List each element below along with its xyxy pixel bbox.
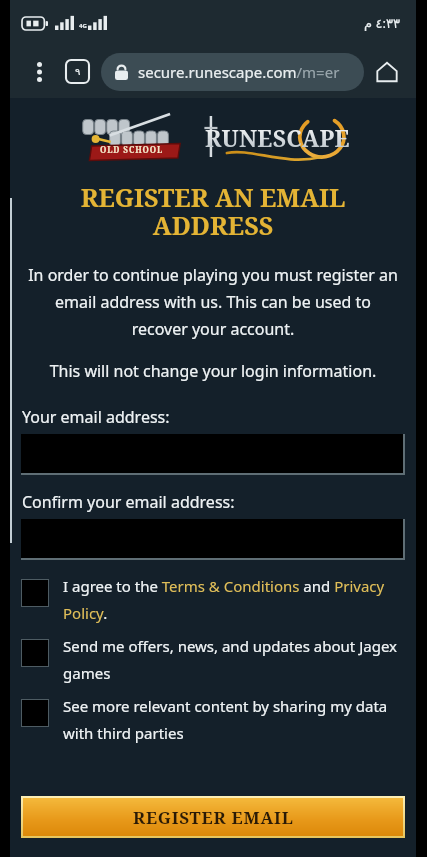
button[interactable]: Checkbox xyxy=(21,636,405,684)
staticText: Send me offers, news, and updates about … xyxy=(63,636,405,684)
staticText: I agree to the Terms & Conditions and Pr… xyxy=(63,576,405,624)
staticText: REGISTER AN EMAIL ADDRESS xyxy=(46,180,380,242)
staticText: REGISTER EMAIL xyxy=(133,806,294,829)
staticText: Your email address: xyxy=(22,406,416,428)
staticText: ٩ xyxy=(75,66,81,78)
staticText: RUNESCAPE xyxy=(205,122,350,153)
button[interactable]: secure.runescape.com/m=er xyxy=(101,53,364,91)
button[interactable]: Checkbox xyxy=(21,576,405,624)
button[interactable]: Tabs xyxy=(66,60,89,83)
staticText: This will not change your login informat… xyxy=(26,360,400,382)
staticText: OLD SCHOOL xyxy=(100,144,164,155)
button[interactable]: More options xyxy=(24,57,54,87)
staticText: secure.runescape.com/m=er xyxy=(138,62,340,82)
staticText: In order to continue playing you must re… xyxy=(26,264,400,340)
button[interactable]: Checkbox xyxy=(21,696,405,744)
button[interactable]: REGISTER EMAIL xyxy=(23,798,403,836)
staticText: ٤:٣٣ م xyxy=(364,14,400,32)
staticText: See more relevant content by sharing my … xyxy=(63,696,405,744)
staticText: 4G xyxy=(79,22,87,30)
staticText: Confirm your email address: xyxy=(22,491,416,513)
button[interactable]: Home xyxy=(372,57,402,87)
